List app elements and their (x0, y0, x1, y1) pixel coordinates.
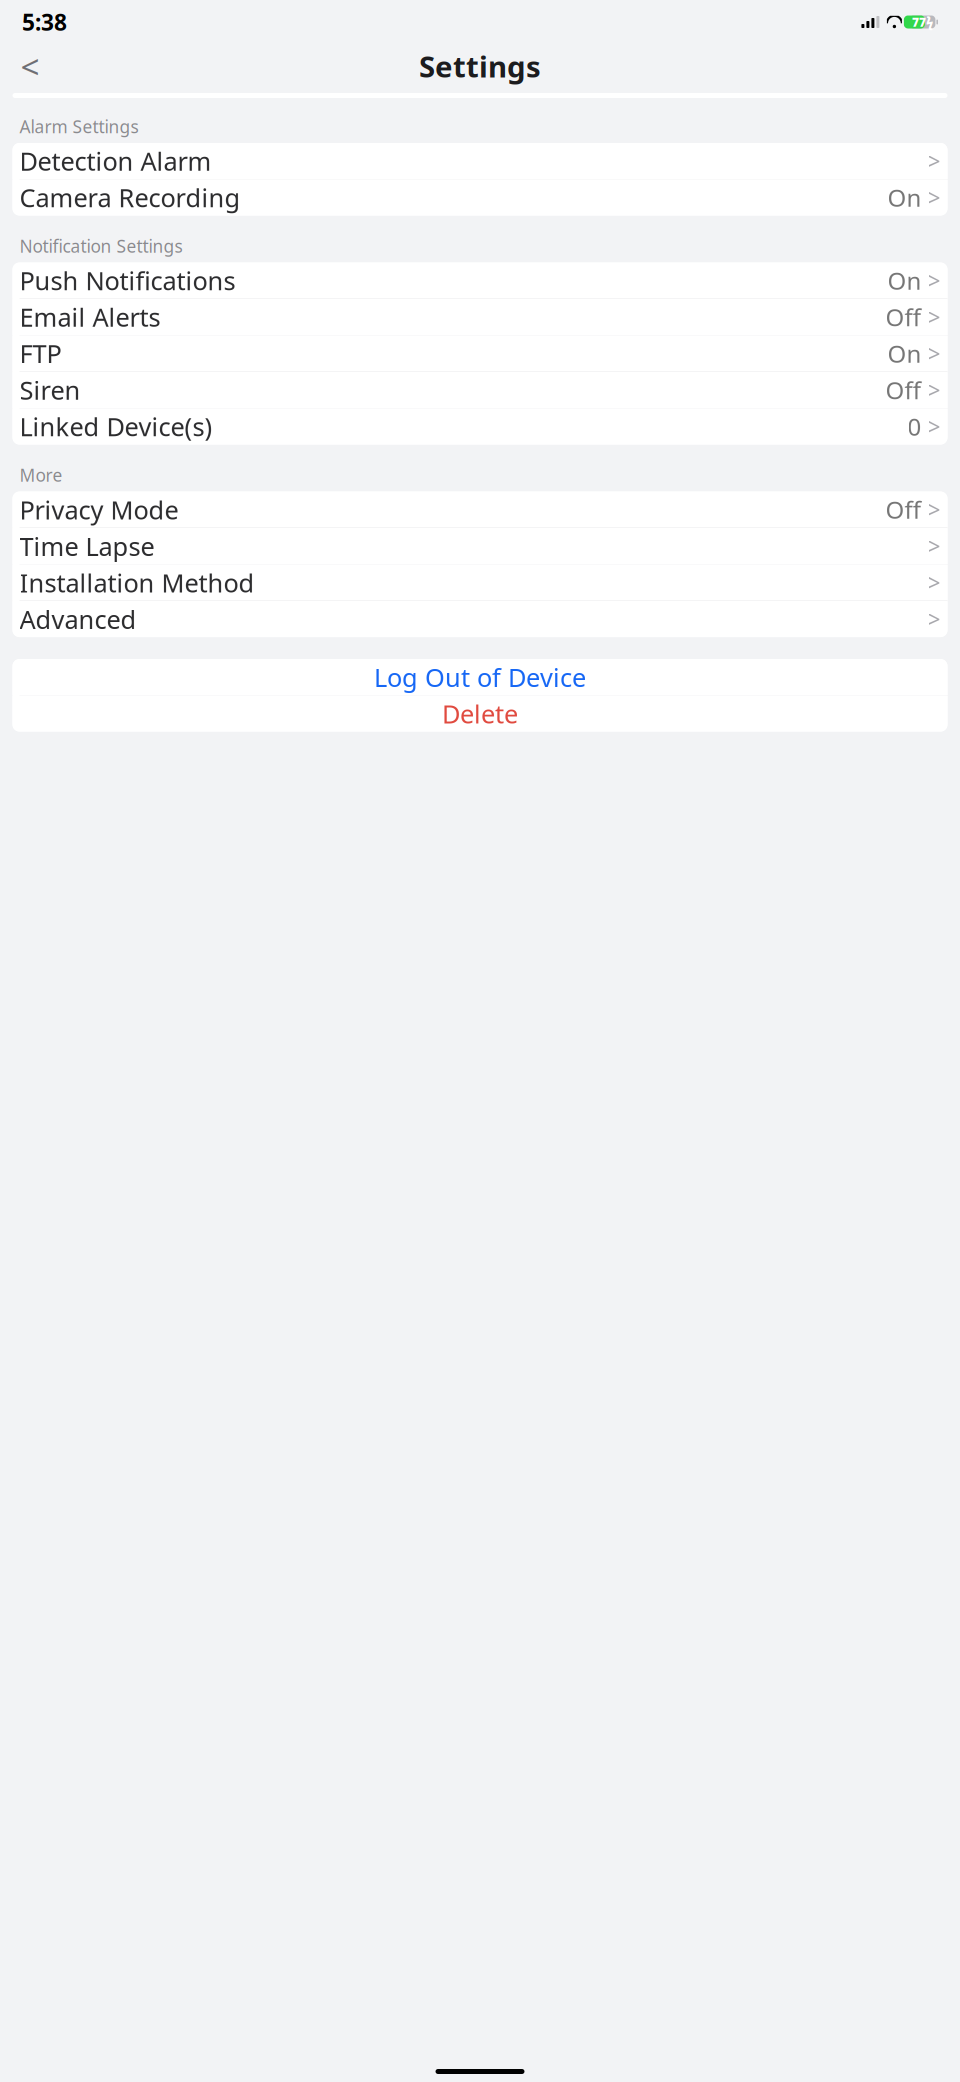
button[interactable]: Back (12, 48, 48, 84)
staticText: Off (885, 494, 921, 525)
button[interactable]: Detection Alarm (12, 143, 947, 179)
staticText: > (927, 531, 940, 561)
staticText: Off (885, 301, 921, 333)
staticText: > (927, 146, 940, 176)
staticText: > (927, 338, 940, 369)
staticText: On (887, 182, 921, 213)
button[interactable]: Delete (12, 696, 947, 732)
staticText: Log Out of Device (374, 660, 586, 694)
staticText: On (887, 338, 921, 369)
button[interactable]: FTP (12, 335, 947, 371)
staticText: > (927, 302, 940, 332)
staticText: Push Notifications (19, 264, 235, 297)
button[interactable]: Push Notifications (12, 262, 947, 298)
staticText: FTP (19, 337, 61, 370)
button[interactable]: Log Out of Device (12, 659, 947, 695)
staticText: Privacy Mode (19, 493, 178, 526)
staticText: > (927, 182, 940, 213)
staticText: Notification Settings (19, 234, 182, 257)
staticText: Email Alerts (19, 300, 160, 334)
staticText: Advanced (19, 602, 136, 636)
button[interactable]: Email Alerts (12, 299, 947, 335)
button[interactable]: Camera Recording (12, 179, 947, 215)
staticText: On (887, 265, 921, 296)
button[interactable]: Linked Device(s) (12, 408, 947, 444)
staticText: > (927, 604, 940, 634)
button[interactable]: Siren (12, 372, 947, 408)
staticText: 5:38 (22, 7, 67, 37)
staticText: Alarm Settings (19, 115, 138, 138)
staticText: 0 (907, 411, 921, 442)
staticText: Detection Alarm (19, 144, 211, 178)
staticText: < (20, 44, 39, 88)
staticText: Camera Recording (19, 181, 240, 214)
staticText: Off (885, 374, 921, 406)
staticText: Linked Device(s) (19, 410, 212, 443)
staticText: > (927, 494, 940, 525)
staticText: > (927, 411, 940, 442)
staticText: More (19, 463, 62, 486)
staticText: Delete (442, 697, 518, 730)
button[interactable]: Privacy Mode (12, 492, 947, 528)
button[interactable]: Installation Method (12, 565, 947, 601)
button[interactable]: Time Lapse (12, 528, 947, 564)
staticText: Installation Method (19, 566, 254, 599)
staticText: > (927, 265, 940, 296)
staticText: Time Lapse (19, 529, 154, 563)
staticText: 77 (912, 14, 926, 30)
staticText: ϟ (926, 13, 933, 31)
button[interactable]: Advanced (12, 601, 947, 637)
staticText: > (927, 375, 940, 405)
staticText: > (927, 567, 940, 598)
staticText: Settings (419, 46, 541, 85)
staticText: Siren (19, 373, 80, 407)
